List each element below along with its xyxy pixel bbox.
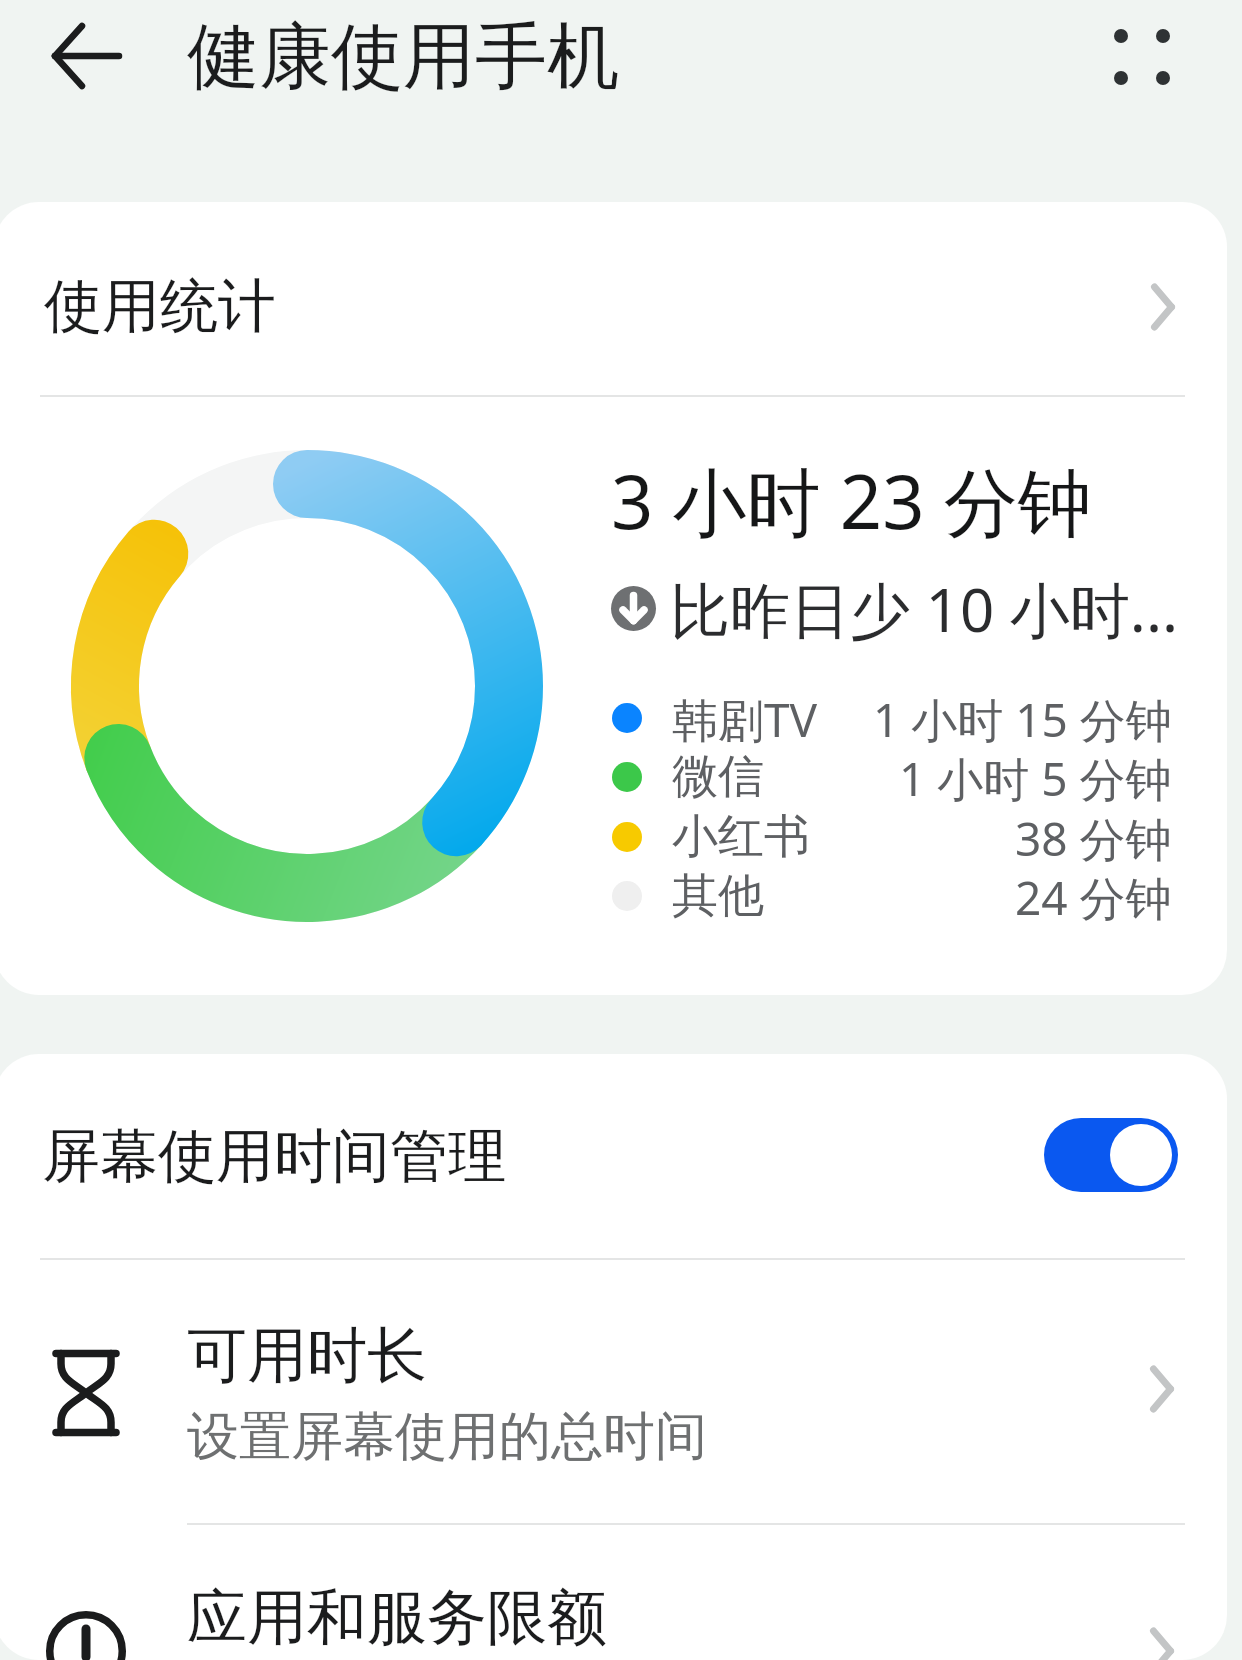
button[interactable]: 应用和服务限额 [0,1517,1227,1660]
button[interactable]: Back [23,0,151,112]
button[interactable]: 屏幕使用时间管理 [0,1054,1227,1255]
staticText: 设置屏幕使用的总时间 [187,1404,707,1470]
staticText: 其他 [672,867,764,925]
staticText: 微信 [672,748,764,806]
button[interactable]: 可用时长 [0,1255,1227,1523]
staticText: 屏幕使用时间管理 [42,1120,506,1193]
button[interactable]: 使用统计 [0,202,1227,392]
staticText: 应用和服务限额 [187,1580,607,1656]
staticText: 38 分钟 [1015,807,1172,867]
staticText: 1 小时 15 分钟 [873,688,1172,748]
staticText: 健康使用手机 [187,12,619,103]
staticText: 韩剧TV [672,688,818,748]
staticText: 比昨日少 10 小时... [670,568,1179,650]
staticText: 小红书 [672,808,810,866]
staticText: 24 分钟 [1015,866,1172,926]
staticText: 3 小时 23 分钟 [611,450,1092,551]
staticText: 使用统计 [44,270,276,343]
button[interactable]: More options [1082,1,1202,113]
staticText: 1 小时 5 分钟 [899,747,1172,807]
staticText: 可用时长 [187,1318,427,1394]
button[interactable]: Screen time toggle [1044,1118,1178,1192]
